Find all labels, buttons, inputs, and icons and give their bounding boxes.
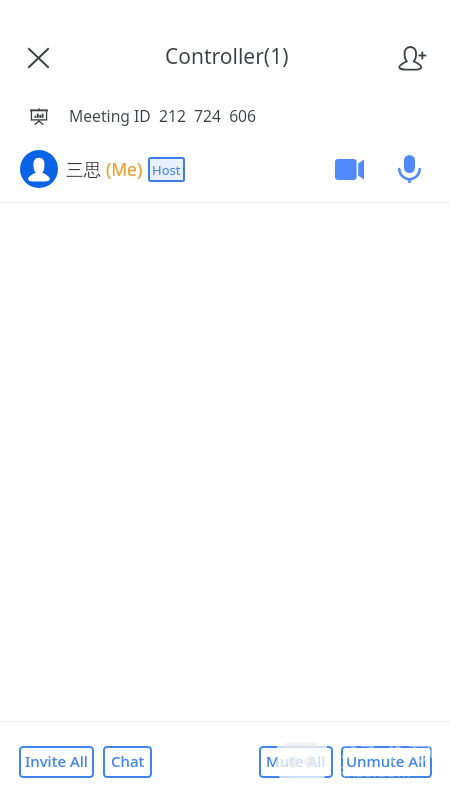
button[interactable]: Close [14,34,62,82]
button[interactable]: Mute All [259,746,333,778]
button[interactable]: Add participant [388,34,436,82]
staticText: Meeting ID 212 724 606 [69,105,257,126]
staticText: 55下载 [340,725,441,769]
staticText: Host [152,161,181,179]
staticText: 三思 [66,157,106,181]
button[interactable]: Unmute All [341,746,432,778]
button[interactable]: Invite All [19,746,94,778]
staticText: Unmute All [346,751,427,771]
staticText: Mute All [266,751,326,771]
button[interactable]: Camera [329,149,369,189]
button[interactable]: 三思 [0,140,450,198]
button[interactable]: Microphone [389,149,429,189]
staticText: Chat [111,751,145,771]
staticText: Invite All [25,751,88,771]
staticText: (Me) [106,157,143,181]
staticText: RR55.COM [337,761,411,781]
button[interactable]: Chat [103,746,152,778]
staticText: Controller(1) [165,42,289,71]
